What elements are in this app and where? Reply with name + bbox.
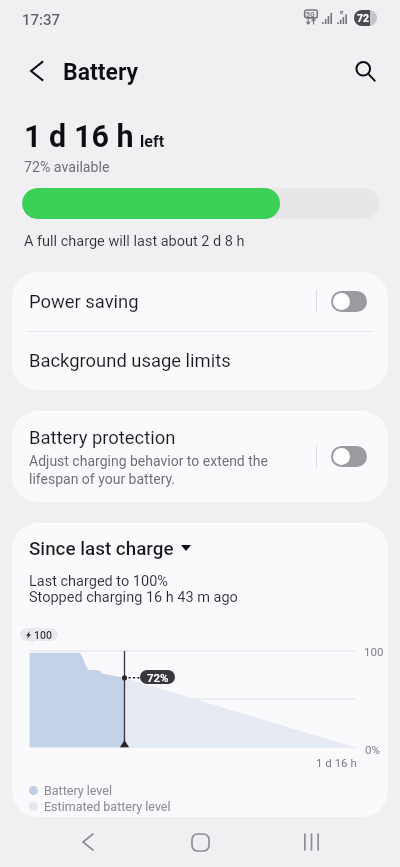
button[interactable]: Battery protection — [12, 411, 388, 502]
staticText: 0% — [365, 743, 380, 756]
staticText: Stopped charging 16 h 43 m ago — [29, 589, 238, 606]
staticText: 72% available — [24, 159, 110, 176]
button[interactable]: Power saving — [12, 272, 388, 331]
staticText: Background usage limits — [29, 350, 231, 372]
staticText: Estimated battery level — [44, 799, 171, 814]
staticText: 1 d 16 h — [24, 119, 134, 155]
button[interactable]: Home — [176, 818, 224, 866]
staticText: left — [140, 132, 165, 151]
staticText: Battery — [63, 59, 139, 86]
staticText: Last charged to 100% — [29, 573, 168, 590]
button[interactable]: Toggle off — [331, 291, 367, 312]
staticText: 5G — [306, 11, 315, 19]
staticText: Adjust charging behavior to extend the l… — [29, 453, 298, 487]
button[interactable]: Navigate up — [12, 47, 60, 95]
button[interactable]: Back — [64, 818, 112, 866]
button[interactable]: Since last charge — [17, 533, 203, 565]
staticText: Since last charge — [29, 538, 174, 560]
staticText: 1 d 16 h — [316, 756, 357, 769]
button[interactable]: Recent apps — [287, 818, 335, 866]
staticText: 100 — [364, 645, 384, 658]
button[interactable]: Background usage limits — [12, 332, 388, 390]
staticText: A full charge will last about 2 d 8 h — [24, 233, 245, 250]
staticText: 100 — [34, 629, 52, 641]
button[interactable]: Toggle off — [331, 446, 367, 467]
button[interactable]: Search — [341, 47, 389, 95]
staticText: Battery protection — [29, 427, 176, 449]
staticText: 72% — [147, 671, 169, 684]
staticText: 17:37 — [22, 11, 61, 29]
staticText: Power saving — [29, 291, 139, 313]
staticText: Battery level — [44, 783, 112, 798]
staticText: 72 — [357, 12, 370, 24]
